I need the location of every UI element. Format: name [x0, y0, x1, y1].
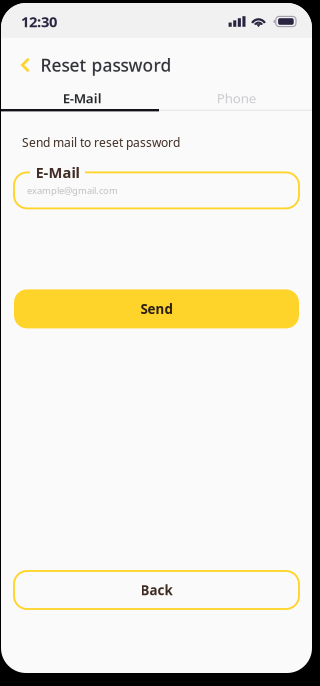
staticText: Send mail to reset password — [22, 134, 180, 150]
button[interactable]: Phone — [156, 87, 312, 109]
button[interactable]: Back — [21, 50, 40, 80]
staticText: Phone — [217, 89, 257, 107]
staticText: 12:30 — [21, 12, 57, 31]
staticText: Send — [140, 300, 172, 318]
staticText: E-Mail — [35, 163, 79, 182]
staticText: Reset password — [40, 53, 171, 76]
staticText: Back — [140, 581, 172, 599]
button[interactable]: Send — [14, 289, 299, 328]
button[interactable]: E-Mail — [1, 87, 156, 109]
staticText: E-Mail — [63, 89, 102, 107]
staticText: example@gmail.com — [27, 184, 118, 197]
button[interactable]: Back — [14, 571, 299, 609]
